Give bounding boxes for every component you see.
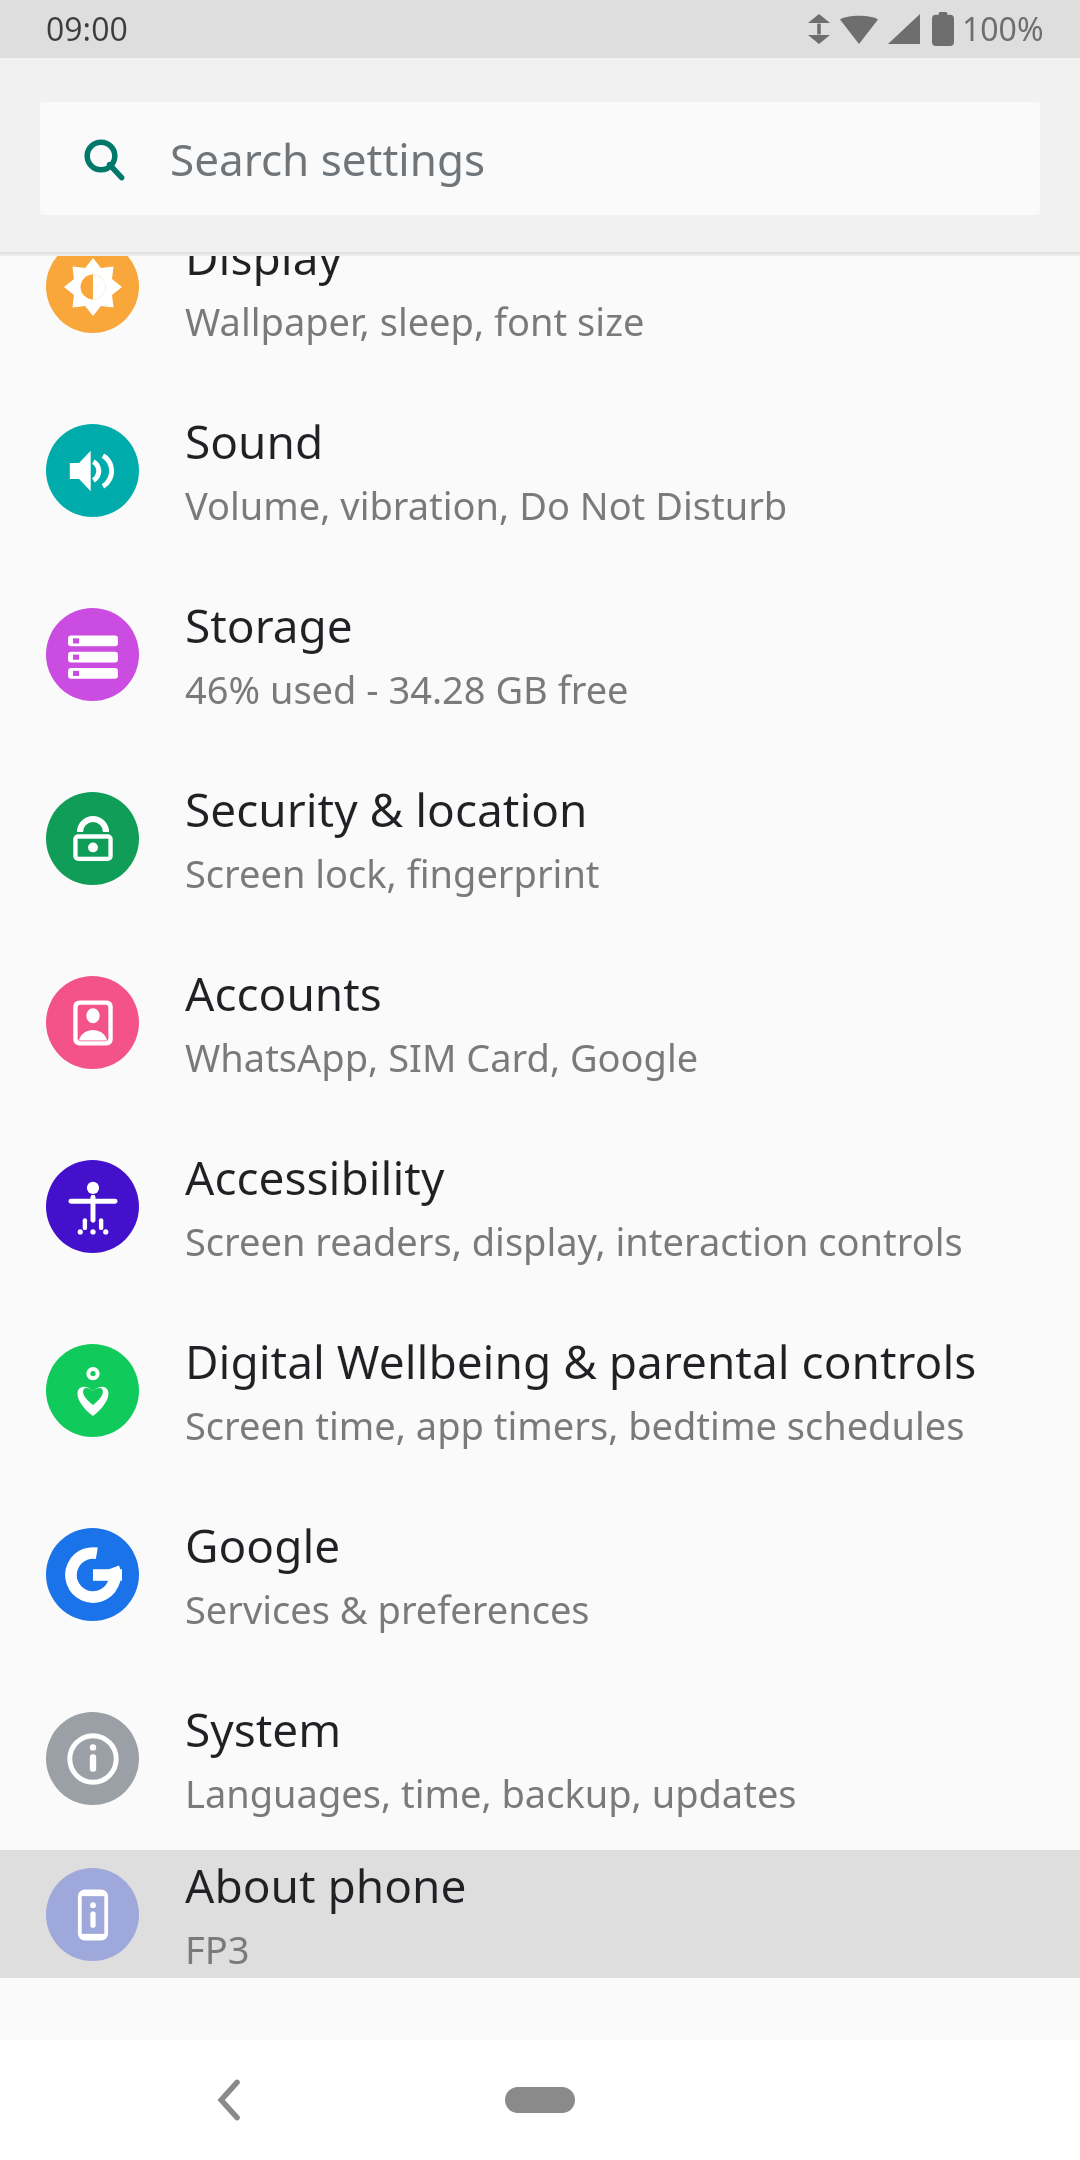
staticText: Languages, time, backup, updates bbox=[185, 1767, 797, 1819]
staticText: System bbox=[185, 1698, 342, 1761]
button[interactable]: Accessibility bbox=[0, 1114, 1080, 1298]
staticText: Digital Wellbeing & parental controls bbox=[185, 1330, 977, 1393]
staticText: Screen time, app timers, bedtime schedul… bbox=[185, 1399, 965, 1451]
button[interactable]: Storage bbox=[0, 562, 1080, 746]
staticText: Screen readers, display, interaction con… bbox=[185, 1215, 963, 1267]
staticText: Volume, vibration, Do Not Disturb bbox=[185, 479, 788, 531]
staticText: Storage bbox=[185, 594, 353, 657]
staticText: WhatsApp, SIM Card, Google bbox=[185, 1031, 699, 1083]
button[interactable]: Sound bbox=[0, 378, 1080, 562]
staticText: Wallpaper, sleep, font size bbox=[185, 295, 645, 347]
staticText: 09:00 bbox=[46, 7, 128, 51]
button[interactable]: System bbox=[0, 1666, 1080, 1850]
staticText: Security & location bbox=[185, 778, 588, 841]
button[interactable]: Accounts bbox=[0, 930, 1080, 1114]
staticText: Screen lock, fingerprint bbox=[185, 847, 600, 899]
button[interactable]: Security & location bbox=[0, 746, 1080, 930]
staticText: Google bbox=[185, 1514, 341, 1577]
button[interactable]: Display bbox=[0, 256, 1080, 378]
button[interactable]: Digital Wellbeing & parental controls bbox=[0, 1298, 1080, 1482]
button[interactable]: About phone bbox=[0, 1850, 1080, 1978]
button[interactable]: Home bbox=[470, 2055, 610, 2145]
staticText: Display bbox=[185, 256, 342, 289]
staticText: Search settings bbox=[170, 129, 486, 189]
staticText: Services & preferences bbox=[185, 1583, 590, 1635]
staticText: Sound bbox=[185, 410, 324, 473]
staticText: 46% used - 34.28 GB free bbox=[185, 663, 629, 715]
staticText: 100% bbox=[962, 7, 1044, 51]
button[interactable]: Search settings bbox=[40, 102, 1040, 215]
button[interactable]: Google bbox=[0, 1482, 1080, 1666]
staticText: FP3 bbox=[185, 1923, 250, 1975]
staticText: Accounts bbox=[185, 962, 382, 1025]
staticText: About phone bbox=[185, 1854, 467, 1917]
staticText: Accessibility bbox=[185, 1146, 445, 1209]
button[interactable]: Back bbox=[178, 2048, 282, 2152]
